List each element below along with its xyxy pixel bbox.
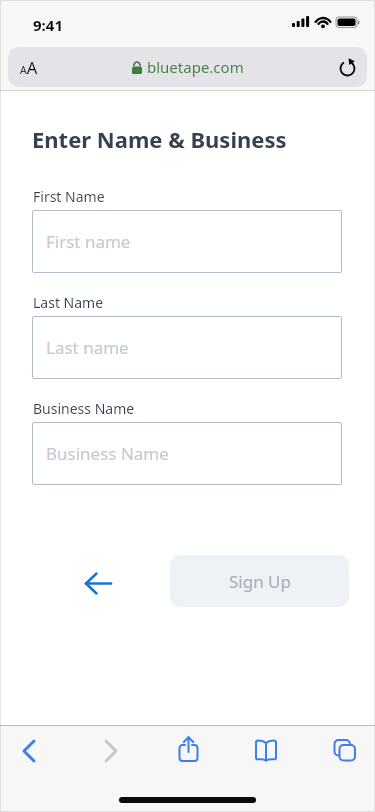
button[interactable]: First name <box>32 210 342 273</box>
staticText: AA <box>20 56 38 78</box>
staticText: Last Name <box>33 293 104 312</box>
staticText: First name <box>46 230 131 253</box>
button[interactable]: Business Name <box>32 422 342 485</box>
button[interactable] <box>14 737 44 767</box>
button[interactable] <box>331 736 359 764</box>
button[interactable] <box>80 565 118 603</box>
staticText: Business Name <box>46 442 169 465</box>
button[interactable] <box>96 737 126 767</box>
staticText: Enter Name & Business <box>32 124 287 154</box>
staticText: Sign Up <box>229 570 291 593</box>
button[interactable]: AA <box>8 47 367 87</box>
staticText: Last name <box>46 336 129 359</box>
button[interactable] <box>253 737 279 763</box>
staticText: Business Name <box>33 399 135 418</box>
button[interactable]: Sign Up <box>170 555 349 607</box>
staticText: First Name <box>33 187 105 206</box>
button[interactable] <box>176 735 202 763</box>
button[interactable]: Last name <box>32 316 342 379</box>
staticText: bluetape.com <box>147 57 244 77</box>
staticText: 9:41 <box>33 15 63 35</box>
